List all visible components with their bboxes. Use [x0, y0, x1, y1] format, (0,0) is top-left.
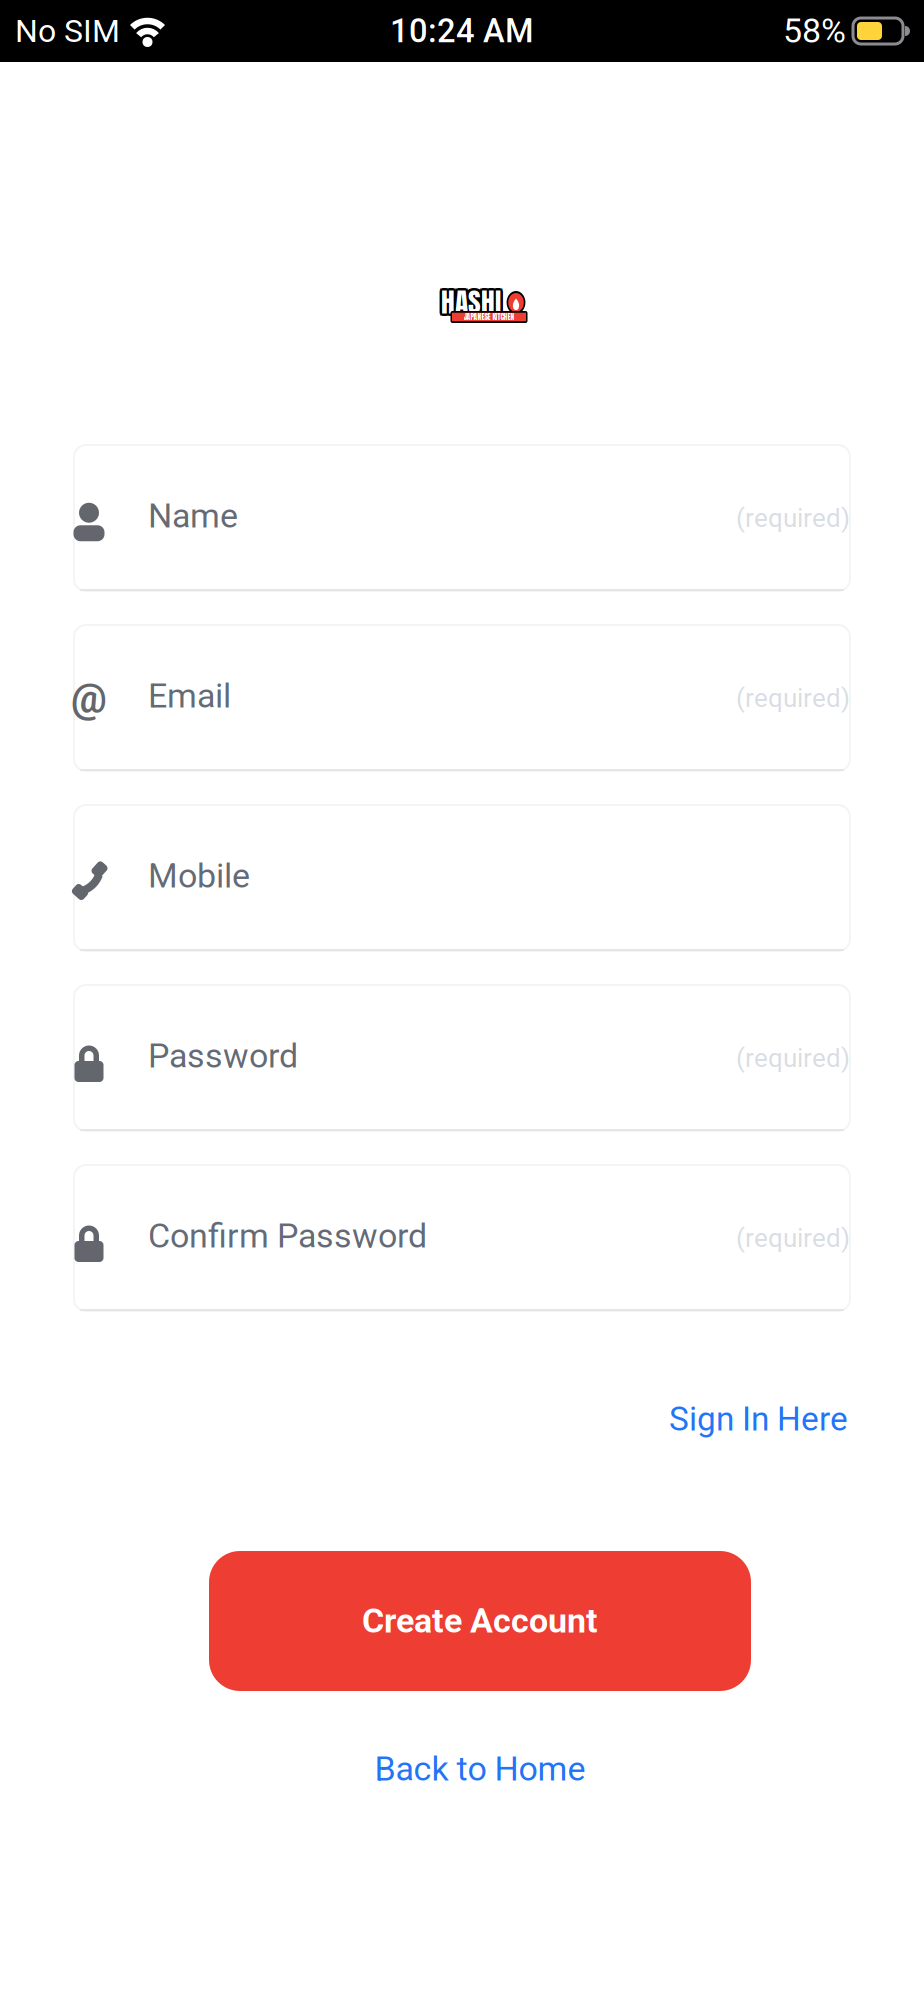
- staticText: No SIM: [15, 12, 120, 50]
- button[interactable]: Back to Home: [374, 1749, 585, 1789]
- staticText: (required): [736, 1223, 850, 1253]
- staticText: Confirm Password: [148, 1216, 427, 1256]
- staticText: Password: [148, 1036, 298, 1076]
- staticText: Sign In Here: [669, 1399, 848, 1439]
- staticText: HASHI: [438, 281, 498, 322]
- button[interactable]: Sign In Here: [669, 1399, 848, 1439]
- staticText: HASHI: [441, 279, 501, 320]
- staticText: Name: [148, 496, 238, 536]
- staticText: HASHI: [441, 284, 501, 325]
- staticText: @: [71, 676, 107, 722]
- staticText: HASHI: [439, 283, 499, 324]
- staticText: (required): [736, 1043, 850, 1073]
- staticText: 10:24 AM: [390, 12, 534, 50]
- staticText: HASHI: [441, 281, 501, 322]
- staticText: 58%: [783, 11, 846, 51]
- staticText: Mobile: [148, 856, 250, 896]
- button[interactable]: Password: [74, 985, 850, 1131]
- staticText: (required): [736, 683, 850, 713]
- staticText: JAPANESE KITCHEN: [463, 311, 514, 322]
- button[interactable]: Create Account: [209, 1551, 751, 1691]
- staticText: HASHI: [443, 283, 503, 324]
- staticText: HASHI: [443, 281, 503, 322]
- button[interactable]: Mobile: [74, 805, 850, 951]
- button[interactable]: Email: [74, 625, 850, 771]
- staticText: (required): [736, 503, 850, 533]
- staticText: Create Account: [362, 1601, 598, 1641]
- staticText: Back to Home: [374, 1749, 585, 1789]
- staticText: HASHI: [439, 279, 499, 320]
- button[interactable]: Confirm Password: [74, 1165, 850, 1311]
- button[interactable]: Name: [74, 445, 850, 591]
- staticText: HASHI: [443, 279, 503, 320]
- staticText: Email: [148, 676, 231, 716]
